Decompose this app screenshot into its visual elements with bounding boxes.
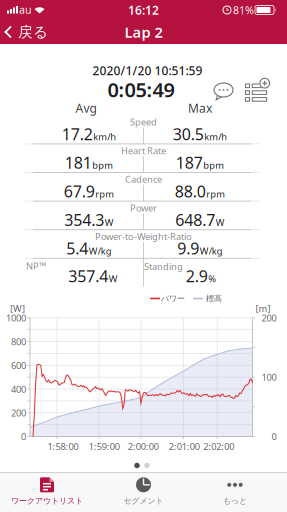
staticText: 標高 — [206, 294, 222, 303]
staticText: 2:00:00 — [128, 440, 159, 453]
staticText: W/kg — [200, 245, 223, 257]
staticText: rpm — [206, 188, 225, 200]
staticText: km/h — [204, 130, 227, 143]
staticText: Lap 2 — [124, 22, 162, 42]
staticText: Speed — [130, 116, 157, 128]
staticText: 戻る — [18, 23, 48, 41]
staticText: 30.5 — [173, 123, 204, 145]
staticText: W — [216, 216, 225, 229]
staticText: km/h — [93, 130, 116, 143]
staticText: Power-to-Weight-Ratio — [95, 230, 192, 243]
staticText: Max — [188, 100, 212, 116]
staticText: Avg — [75, 100, 96, 116]
staticText: Heart Rate — [121, 144, 166, 157]
staticText: % — [208, 272, 216, 285]
staticText: 600 — [11, 359, 26, 371]
staticText: W/kg — [89, 245, 112, 257]
staticText: 1:59:00 — [89, 440, 120, 453]
button[interactable]: 戻る — [2, 19, 50, 45]
staticText: 354.3 — [64, 209, 104, 230]
staticText: 800 — [11, 335, 26, 348]
staticText: 2.9 — [186, 265, 208, 287]
staticText: 17.2 — [62, 123, 93, 145]
staticText: セグメント — [123, 496, 163, 506]
staticText: 9.9 — [177, 238, 199, 259]
button[interactable]: もっと — [200, 472, 270, 510]
staticText: 1000 — [6, 312, 26, 324]
staticText: Power — [130, 202, 157, 214]
staticText: 88.0 — [175, 181, 206, 202]
staticText: [m] — [255, 302, 270, 315]
button[interactable]: ワークアウトリスト — [1, 472, 93, 510]
staticText: Standing — [144, 260, 183, 273]
staticText: 648.7 — [175, 209, 215, 230]
staticText: 1:58:00 — [47, 440, 78, 453]
staticText: au — [19, 2, 32, 17]
staticText: NP™ — [26, 260, 46, 272]
staticText: 2:02:00 — [203, 440, 234, 453]
staticText: Cadence — [125, 173, 162, 185]
staticText: 81% — [233, 3, 254, 17]
staticText: 187 — [176, 152, 203, 173]
staticText: 0:05:49 — [107, 76, 174, 103]
staticText: W — [105, 216, 114, 229]
staticText: 200 — [11, 407, 26, 419]
button[interactable]: ラップリスト — [245, 80, 270, 104]
staticText: 2:01:00 — [169, 440, 200, 453]
staticText: 0 — [21, 430, 26, 443]
button[interactable]: セグメント — [103, 472, 183, 510]
staticText: 67.9 — [64, 181, 95, 202]
staticText: bpm — [92, 159, 113, 171]
staticText: もっと — [223, 496, 247, 506]
staticText: 400 — [11, 383, 26, 395]
staticText: 0 — [271, 430, 276, 443]
staticText: 100 — [261, 371, 276, 383]
staticText: 181 — [65, 152, 92, 173]
staticText: ワークアウトリスト — [11, 496, 83, 506]
staticText: パワー — [161, 294, 185, 303]
button[interactable]: メモ — [213, 82, 236, 102]
staticText: 357.4 — [68, 265, 108, 287]
staticText: bpm — [203, 159, 224, 171]
staticText: 200 — [261, 312, 276, 324]
staticText: 16:12 — [128, 2, 159, 18]
staticText: rpm — [95, 188, 114, 200]
staticText: [W] — [10, 302, 25, 315]
staticText: 2020/1/20 10:51:59 — [92, 62, 202, 78]
staticText: 5.4 — [66, 238, 88, 259]
staticText: W — [109, 272, 118, 285]
